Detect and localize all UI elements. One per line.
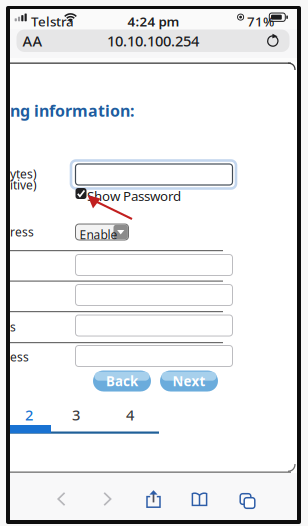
staticText: itive) [10, 177, 37, 193]
button[interactable]: Next [160, 370, 218, 391]
staticText: Show Password [87, 187, 181, 205]
staticText: AA [22, 31, 42, 50]
button[interactable]: Back [38, 482, 84, 516]
staticText: ytes) [10, 166, 37, 182]
button[interactable]: Bookmarks [176, 482, 222, 516]
staticText: ng information: [10, 100, 134, 121]
staticText: Enable [79, 227, 117, 242]
staticText: 4:24 pm [127, 12, 179, 30]
staticText: s [10, 319, 16, 335]
button[interactable]: Enable [75, 224, 128, 240]
button[interactable]: Share [130, 482, 176, 516]
staticText: 71% [247, 12, 274, 30]
staticText: Back [106, 372, 138, 390]
staticText: ress [10, 224, 34, 240]
staticText: ess [10, 349, 29, 365]
button[interactable]: Reload [257, 29, 289, 52]
staticText: 4 [126, 405, 134, 424]
staticText: Next [172, 372, 205, 390]
button[interactable]: Page settings [16, 29, 48, 52]
button[interactable]: Back [93, 370, 151, 391]
staticText: Telstra [31, 12, 74, 30]
button[interactable]: Forward [84, 482, 130, 516]
staticText: 10.10.100.254 [107, 31, 199, 50]
button[interactable]: Tabs [222, 482, 268, 516]
staticText: 2 [25, 405, 33, 424]
staticText: 3 [72, 405, 80, 424]
